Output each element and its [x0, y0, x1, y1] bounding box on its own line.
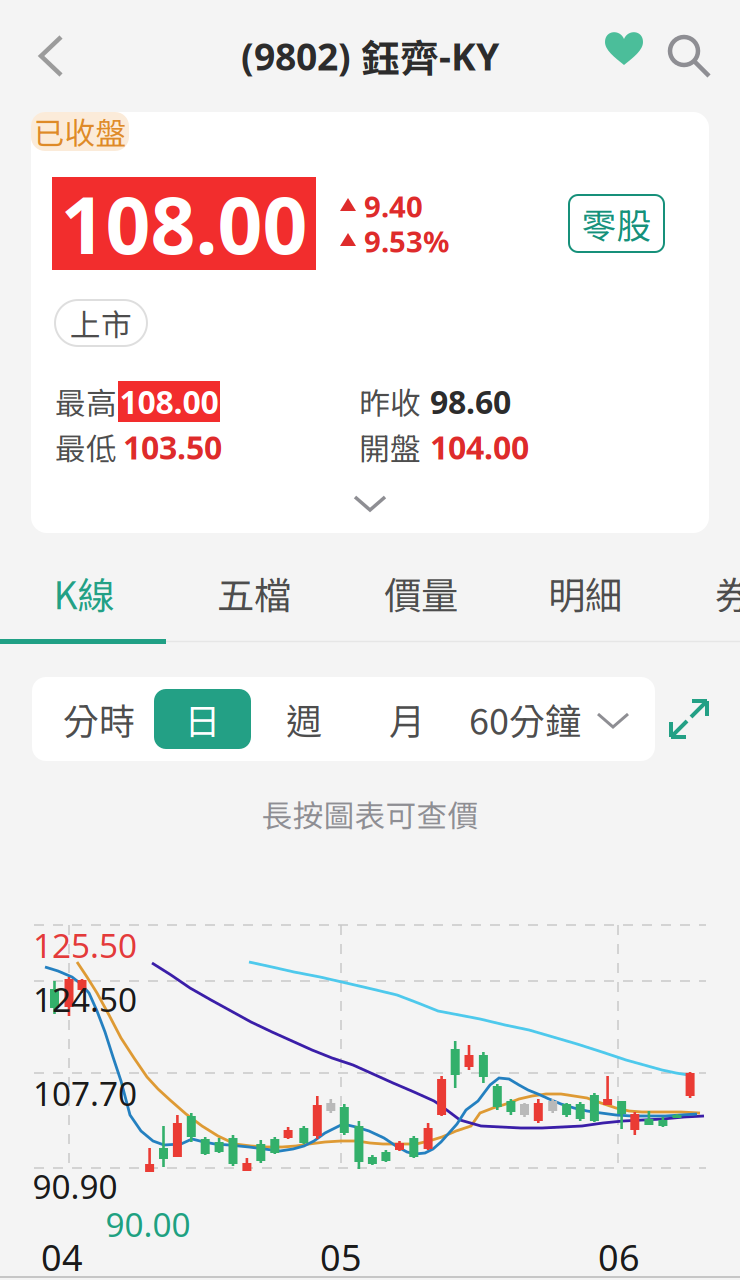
staticText: 108.00	[119, 380, 218, 423]
button[interactable]: 零股	[569, 195, 664, 252]
staticText: 上市	[70, 301, 132, 345]
button[interactable]: 五檔	[170, 547, 338, 639]
staticText: 9.53%	[364, 221, 449, 260]
staticText: 06	[598, 1233, 640, 1280]
staticText: 週	[286, 693, 322, 745]
staticText: 125.50	[33, 923, 137, 967]
staticText: 昨收	[359, 379, 421, 424]
staticText: 價量	[384, 566, 458, 620]
staticText: 最高	[55, 379, 117, 424]
staticText: 60分鐘	[469, 693, 581, 745]
staticText: 103.50	[123, 426, 222, 468]
button[interactable]: Back	[16, 20, 88, 92]
staticText: 日	[184, 693, 220, 745]
button[interactable]: 日	[154, 689, 251, 749]
staticText: 最低	[55, 425, 117, 469]
button[interactable]: 分時	[44, 689, 154, 749]
staticText: 開盤	[359, 425, 421, 469]
staticText: 90.90	[32, 1164, 117, 1208]
staticText: 98.60	[430, 380, 511, 423]
staticText: 107.70	[33, 1071, 137, 1115]
button[interactable]: 價量	[337, 547, 505, 639]
staticText: 月	[389, 693, 425, 745]
staticText: 分時	[63, 693, 135, 745]
button[interactable]: 明細	[501, 547, 669, 639]
button[interactable]: Show more details	[342, 489, 398, 515]
button[interactable]: K線	[0, 547, 168, 639]
staticText: 9.40	[364, 186, 423, 225]
staticText: 明細	[548, 566, 622, 620]
button[interactable]: 券商	[668, 547, 740, 639]
button[interactable]: Search	[658, 25, 720, 87]
button[interactable]: 月	[357, 689, 457, 749]
staticText: 104.00	[430, 426, 529, 468]
button[interactable]: 60分鐘	[457, 689, 643, 749]
staticText: 108.00	[60, 171, 307, 276]
staticText: 90.00	[105, 1202, 190, 1246]
button[interactable]: Full screen chart	[666, 696, 712, 742]
staticText: 124.50	[33, 977, 137, 1021]
staticText: 04	[41, 1233, 83, 1280]
staticText: -KY	[439, 31, 499, 81]
staticText: 長按圖表可查價	[261, 792, 478, 836]
staticText: K線	[53, 566, 114, 620]
staticText: 鈺齊	[361, 28, 439, 84]
button[interactable]: 週	[251, 689, 357, 749]
staticText: 05	[320, 1233, 362, 1280]
staticText: 已收盤	[33, 109, 126, 154]
staticText: 券商	[715, 566, 740, 620]
staticText: (9802)	[241, 31, 361, 81]
staticText: 五檔	[217, 566, 291, 620]
staticText: 零股	[581, 198, 651, 249]
button[interactable]: Add to favourites	[593, 25, 655, 87]
